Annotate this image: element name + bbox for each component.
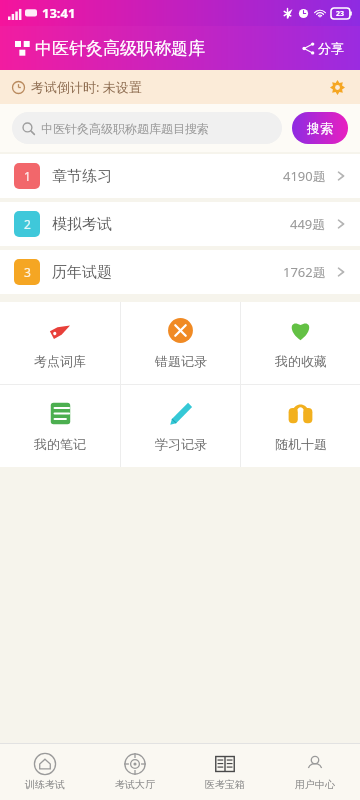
button[interactable]: 考点词库 bbox=[0, 302, 120, 384]
staticText: 3 bbox=[24, 264, 31, 280]
staticText: 13:41 bbox=[42, 4, 76, 22]
staticText: 用户中心 bbox=[295, 778, 335, 791]
staticText: 449题 bbox=[290, 215, 326, 233]
staticText: 考试大厅 bbox=[115, 778, 155, 791]
staticText: 我的笔记 bbox=[34, 436, 86, 452]
button[interactable]: Settings bbox=[326, 76, 348, 98]
button[interactable]: 中医针灸高级职称题库题目搜索 bbox=[12, 112, 282, 144]
button[interactable]: Menu bbox=[12, 38, 32, 58]
button[interactable]: 我的笔记 bbox=[0, 385, 120, 467]
button[interactable]: 2 bbox=[0, 202, 360, 246]
staticText: 学习记录 bbox=[155, 436, 207, 452]
staticText: 4190题 bbox=[283, 167, 326, 185]
staticText: 1762题 bbox=[283, 263, 326, 281]
staticText: 中医针灸高级职称题库题目搜索 bbox=[41, 121, 209, 136]
button[interactable]: 学习记录 bbox=[121, 385, 240, 467]
button[interactable]: 训练考试 bbox=[0, 744, 90, 800]
staticText: 训练考试 bbox=[25, 778, 65, 791]
staticText: 医考宝箱 bbox=[205, 778, 245, 791]
button[interactable]: 用户中心 bbox=[270, 744, 360, 800]
button[interactable]: 3 bbox=[0, 250, 360, 294]
staticText: 我的收藏 bbox=[275, 353, 327, 369]
staticText: 2 bbox=[24, 216, 31, 232]
button[interactable]: 搜索 bbox=[292, 112, 348, 144]
staticText: 搜索 bbox=[307, 120, 333, 136]
staticText: 模拟考试 bbox=[52, 215, 112, 234]
staticText: 1 bbox=[24, 168, 31, 184]
button[interactable]: 随机十题 bbox=[241, 385, 360, 467]
staticText: 错题记录 bbox=[155, 353, 207, 369]
staticText: 历年试题 bbox=[52, 263, 112, 282]
staticText: 考试倒计时: 未设置 bbox=[31, 78, 142, 96]
button[interactable]: 考试大厅 bbox=[90, 744, 180, 800]
staticText: 23 bbox=[336, 9, 345, 19]
staticText: 分享 bbox=[318, 40, 344, 56]
button[interactable]: 分享 bbox=[298, 36, 348, 60]
button[interactable]: 错题记录 bbox=[121, 302, 240, 384]
button[interactable]: 考试倒计时: 未设置 bbox=[0, 70, 360, 104]
button[interactable]: 1 bbox=[0, 154, 360, 198]
staticText: 考点词库 bbox=[34, 353, 86, 369]
staticText: 随机十题 bbox=[275, 436, 327, 452]
staticText: 中医针灸高级职称题库 bbox=[35, 38, 205, 59]
button[interactable]: 我的收藏 bbox=[241, 302, 360, 384]
staticText: 章节练习 bbox=[52, 167, 112, 186]
button[interactable]: 医考宝箱 bbox=[180, 744, 270, 800]
